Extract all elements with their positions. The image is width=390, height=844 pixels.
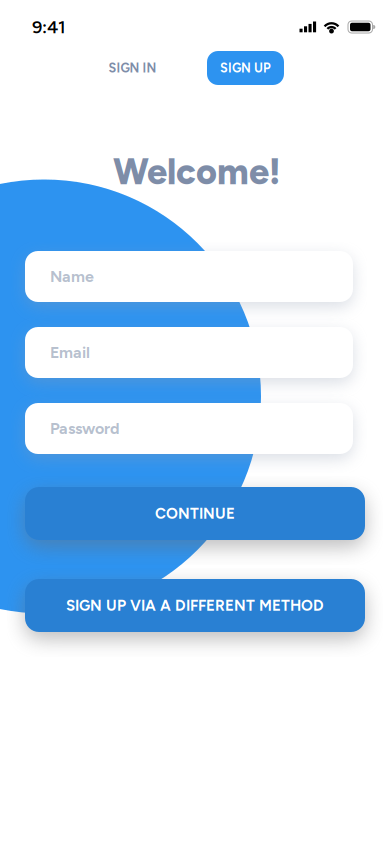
button[interactable]: Password: [25, 403, 353, 454]
staticText: SIGN UP VIA A DIFFERENT METHOD: [66, 596, 324, 615]
button[interactable]: CONTINUE: [25, 487, 365, 540]
staticText: 9:41: [32, 16, 66, 38]
staticText: Email: [50, 343, 90, 362]
staticText: SIGN IN: [108, 60, 156, 76]
staticText: Welcome!: [113, 150, 280, 193]
button[interactable]: Email: [25, 327, 353, 378]
staticText: CONTINUE: [155, 504, 235, 523]
button[interactable]: SIGN IN: [94, 51, 171, 85]
button[interactable]: SIGN UP VIA A DIFFERENT METHOD: [25, 579, 365, 632]
staticText: Name: [50, 267, 94, 286]
button[interactable]: Name: [25, 251, 353, 302]
staticText: SIGN UP: [220, 60, 271, 76]
button[interactable]: SIGN UP: [207, 51, 284, 85]
staticText: Password: [50, 419, 120, 438]
